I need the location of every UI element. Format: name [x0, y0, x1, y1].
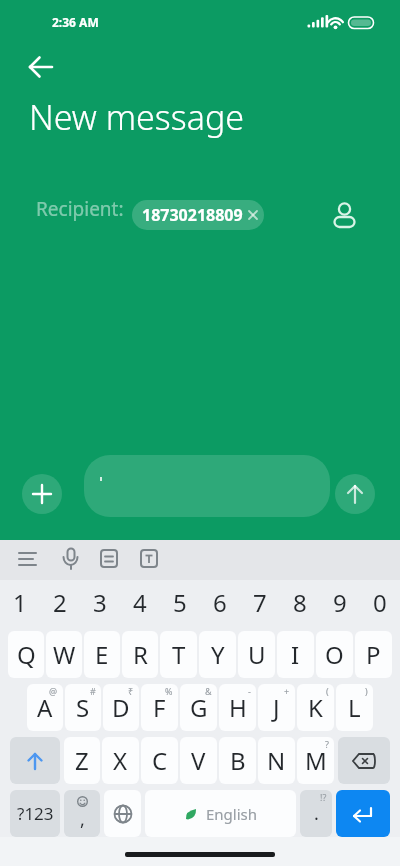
staticText: 8 — [293, 586, 307, 619]
button[interactable]: , — [64, 790, 100, 837]
staticText: @ — [49, 685, 58, 697]
button[interactable]: E — [84, 631, 120, 678]
staticText: , — [80, 807, 85, 832]
staticText: 18730218809 — [142, 204, 243, 226]
staticText: J — [273, 691, 280, 724]
staticText: O — [325, 638, 344, 671]
staticText: # — [90, 685, 96, 697]
staticText: E — [95, 638, 109, 671]
button[interactable]: H — [219, 684, 256, 731]
button[interactable]: 7 — [240, 580, 280, 625]
staticText: L — [348, 691, 361, 724]
button[interactable]: A — [27, 684, 63, 731]
staticText: 1 — [13, 586, 27, 619]
button[interactable] — [331, 200, 359, 228]
staticText: Z — [75, 744, 89, 777]
staticText: % — [165, 685, 173, 697]
button[interactable]: F — [141, 684, 178, 731]
staticText: 7 — [253, 586, 267, 619]
button[interactable]: X — [102, 737, 139, 784]
staticText: & — [205, 685, 212, 697]
staticText: T — [172, 638, 186, 671]
button[interactable]: R — [122, 631, 158, 678]
button[interactable]: Z — [64, 737, 100, 784]
staticText: + — [284, 685, 290, 697]
button[interactable]: 18730218809 — [132, 200, 264, 230]
button[interactable]: G — [180, 684, 217, 731]
staticText: English — [206, 804, 258, 824]
staticText: M — [305, 744, 327, 777]
staticText: V — [191, 744, 206, 777]
button[interactable]: D — [103, 684, 139, 731]
button[interactable] — [60, 547, 82, 571]
staticText: Y — [211, 638, 225, 671]
button[interactable]: Q — [8, 631, 44, 678]
button[interactable]: ?123 — [10, 790, 60, 837]
staticText: C — [152, 744, 168, 777]
staticText: 4 — [133, 586, 147, 619]
staticText: S — [76, 691, 90, 724]
staticText: X — [113, 744, 128, 777]
button[interactable]: 0 — [360, 580, 400, 625]
button[interactable]: 2 — [40, 580, 80, 625]
button[interactable]: W — [46, 631, 82, 678]
button[interactable]: 6 — [200, 580, 240, 625]
staticText: P — [366, 638, 381, 671]
staticText: D — [112, 691, 130, 724]
button[interactable]: Y — [199, 631, 236, 678]
button[interactable]: 1 — [0, 580, 40, 625]
staticText: G — [190, 691, 208, 724]
button[interactable] — [84, 455, 330, 517]
button[interactable] — [338, 737, 390, 784]
button[interactable]: L — [336, 684, 373, 731]
button[interactable]: English — [145, 790, 296, 837]
button[interactable]: N — [258, 737, 295, 784]
staticText: 6 — [213, 586, 227, 619]
staticText: Q — [17, 638, 36, 671]
button[interactable]: J — [258, 684, 295, 731]
staticText: H — [229, 691, 247, 724]
staticText: - — [248, 685, 251, 697]
button[interactable]: 3 — [80, 580, 120, 625]
button[interactable]: O — [316, 631, 353, 678]
staticText: ( — [326, 685, 329, 697]
staticText: 9 — [333, 586, 347, 619]
staticText: F — [153, 691, 166, 724]
button[interactable]: U — [238, 631, 275, 678]
button[interactable]: I — [277, 631, 314, 678]
button[interactable] — [335, 474, 375, 514]
staticText: N — [267, 744, 286, 777]
staticText: 0 — [373, 586, 387, 619]
button[interactable]: 4 — [120, 580, 160, 625]
staticText: ) — [365, 685, 368, 697]
button[interactable] — [104, 790, 141, 837]
button[interactable]: S — [65, 684, 101, 731]
button[interactable]: P — [355, 631, 392, 678]
button[interactable]: K — [297, 684, 334, 731]
button[interactable]: 9 — [320, 580, 360, 625]
staticText: 3 — [93, 586, 107, 619]
button[interactable]: . — [300, 790, 332, 837]
button[interactable]: 8 — [280, 580, 320, 625]
button[interactable]: V — [180, 737, 217, 784]
button[interactable]: 5 — [160, 580, 200, 625]
staticText: !? — [320, 791, 327, 803]
staticText: 2 — [53, 586, 67, 619]
button[interactable]: B — [219, 737, 256, 784]
staticText: New message — [29, 94, 245, 140]
staticText: ?123 — [17, 802, 54, 825]
button[interactable] — [22, 474, 62, 514]
staticText: . — [314, 801, 319, 826]
button[interactable] — [140, 549, 160, 569]
button[interactable] — [100, 549, 120, 569]
staticText: Recipient: — [36, 196, 124, 222]
button[interactable] — [28, 55, 54, 79]
button[interactable] — [10, 737, 60, 784]
button[interactable]: M — [297, 737, 334, 784]
button[interactable]: C — [141, 737, 178, 784]
staticText: I — [291, 638, 300, 671]
button[interactable]: T — [160, 631, 197, 678]
button[interactable] — [17, 549, 39, 569]
staticText: W — [53, 638, 76, 671]
button[interactable] — [336, 790, 390, 837]
